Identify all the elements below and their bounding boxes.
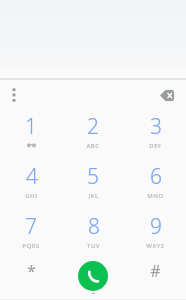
button[interactable]: Call xyxy=(78,261,108,291)
staticText: 4 xyxy=(26,162,38,191)
button[interactable]: 4 xyxy=(0,162,62,200)
staticText: 0 xyxy=(87,260,99,289)
staticText: 3 xyxy=(150,112,162,141)
button[interactable]: 3 xyxy=(124,112,186,150)
staticText: 1 xyxy=(25,112,37,141)
button[interactable]: * xyxy=(0,260,62,294)
staticText: 7 xyxy=(25,212,37,241)
staticText: 6 xyxy=(150,162,162,191)
staticText: 9 xyxy=(150,212,162,241)
staticText: MNO xyxy=(147,192,164,200)
staticText: PQRS xyxy=(22,242,40,250)
staticText: DEF xyxy=(149,142,162,150)
staticText: 5 xyxy=(87,162,99,191)
button[interactable]: 7 xyxy=(0,212,62,250)
staticText: JKL xyxy=(88,192,99,200)
button[interactable]: 1 xyxy=(0,112,62,150)
button[interactable]: 0 xyxy=(62,260,124,294)
button[interactable]: 6 xyxy=(124,162,186,200)
button[interactable]: # xyxy=(124,260,186,294)
staticText: # xyxy=(150,260,161,282)
button[interactable]: 5 xyxy=(62,162,124,200)
button[interactable]: More options xyxy=(5,81,23,109)
staticText: TUV xyxy=(87,242,100,250)
staticText: + xyxy=(91,289,96,294)
staticText: ABC xyxy=(86,142,100,150)
button[interactable]: 2 xyxy=(62,112,124,150)
staticText: * xyxy=(27,260,36,282)
button[interactable]: Backspace xyxy=(156,83,178,107)
button[interactable]: 8 xyxy=(62,212,124,250)
button[interactable]: 9 xyxy=(124,212,186,250)
staticText: 8 xyxy=(88,212,100,241)
staticText: WXYZ xyxy=(146,242,165,250)
staticText: 2 xyxy=(87,112,99,141)
staticText: GHI xyxy=(25,192,38,200)
